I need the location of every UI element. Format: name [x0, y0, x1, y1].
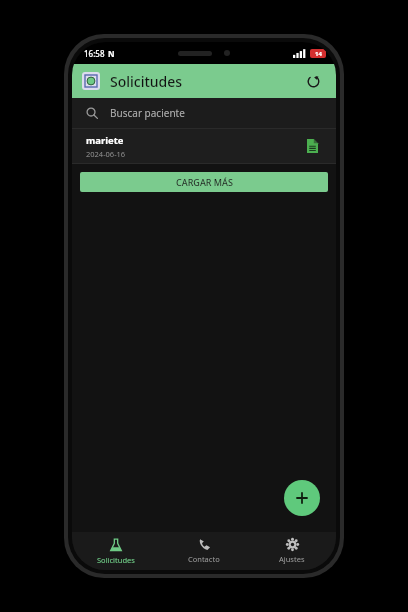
staticText: Contacto [188, 554, 220, 564]
button[interactable]: CARGAR MÁS [80, 172, 328, 192]
button[interactable]: Ver documento [302, 136, 322, 156]
button[interactable]: Contacto [160, 532, 248, 570]
staticText: Buscar paciente [110, 106, 185, 120]
button[interactable]: mariete [72, 129, 336, 163]
staticText: CARGAR MÁS [176, 176, 233, 188]
staticText: N [108, 48, 115, 59]
button[interactable]: Buscar paciente [72, 98, 336, 128]
staticText: mariete [86, 134, 124, 147]
button[interactable]: Solicitudes [72, 532, 160, 570]
staticText: Solicitudes [97, 555, 135, 565]
staticText: 16:58 [84, 48, 105, 59]
staticText: Solicitudes [110, 72, 183, 91]
button[interactable]: Ajustes [248, 532, 336, 570]
staticText: Ajustes [279, 554, 305, 564]
staticText: 14 [315, 50, 322, 58]
button[interactable]: Actualizar [300, 68, 326, 94]
staticText: 2024-06-16 [86, 149, 126, 159]
button[interactable]: Nueva solicitud [284, 480, 320, 516]
